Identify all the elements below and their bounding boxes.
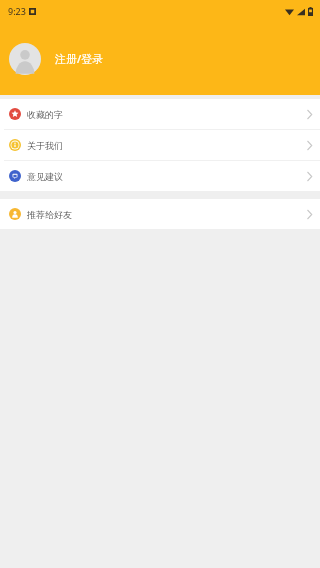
staticText: 注册/登录 [55, 51, 104, 66]
staticText: 收藏的字 [27, 109, 63, 120]
button[interactable]: 推荐给好友 [0, 199, 320, 229]
button[interactable]: 收藏的字 [0, 99, 320, 129]
staticText: 推荐给好友 [27, 209, 72, 220]
staticText: 关于我们 [27, 140, 63, 151]
button[interactable]: 注册/登录 [0, 22, 320, 95]
button[interactable]: 关于我们 [0, 130, 320, 160]
button[interactable]: 意见建议 [0, 161, 320, 191]
staticText: 意见建议 [27, 171, 63, 182]
staticText: 9:23 [8, 5, 26, 17]
